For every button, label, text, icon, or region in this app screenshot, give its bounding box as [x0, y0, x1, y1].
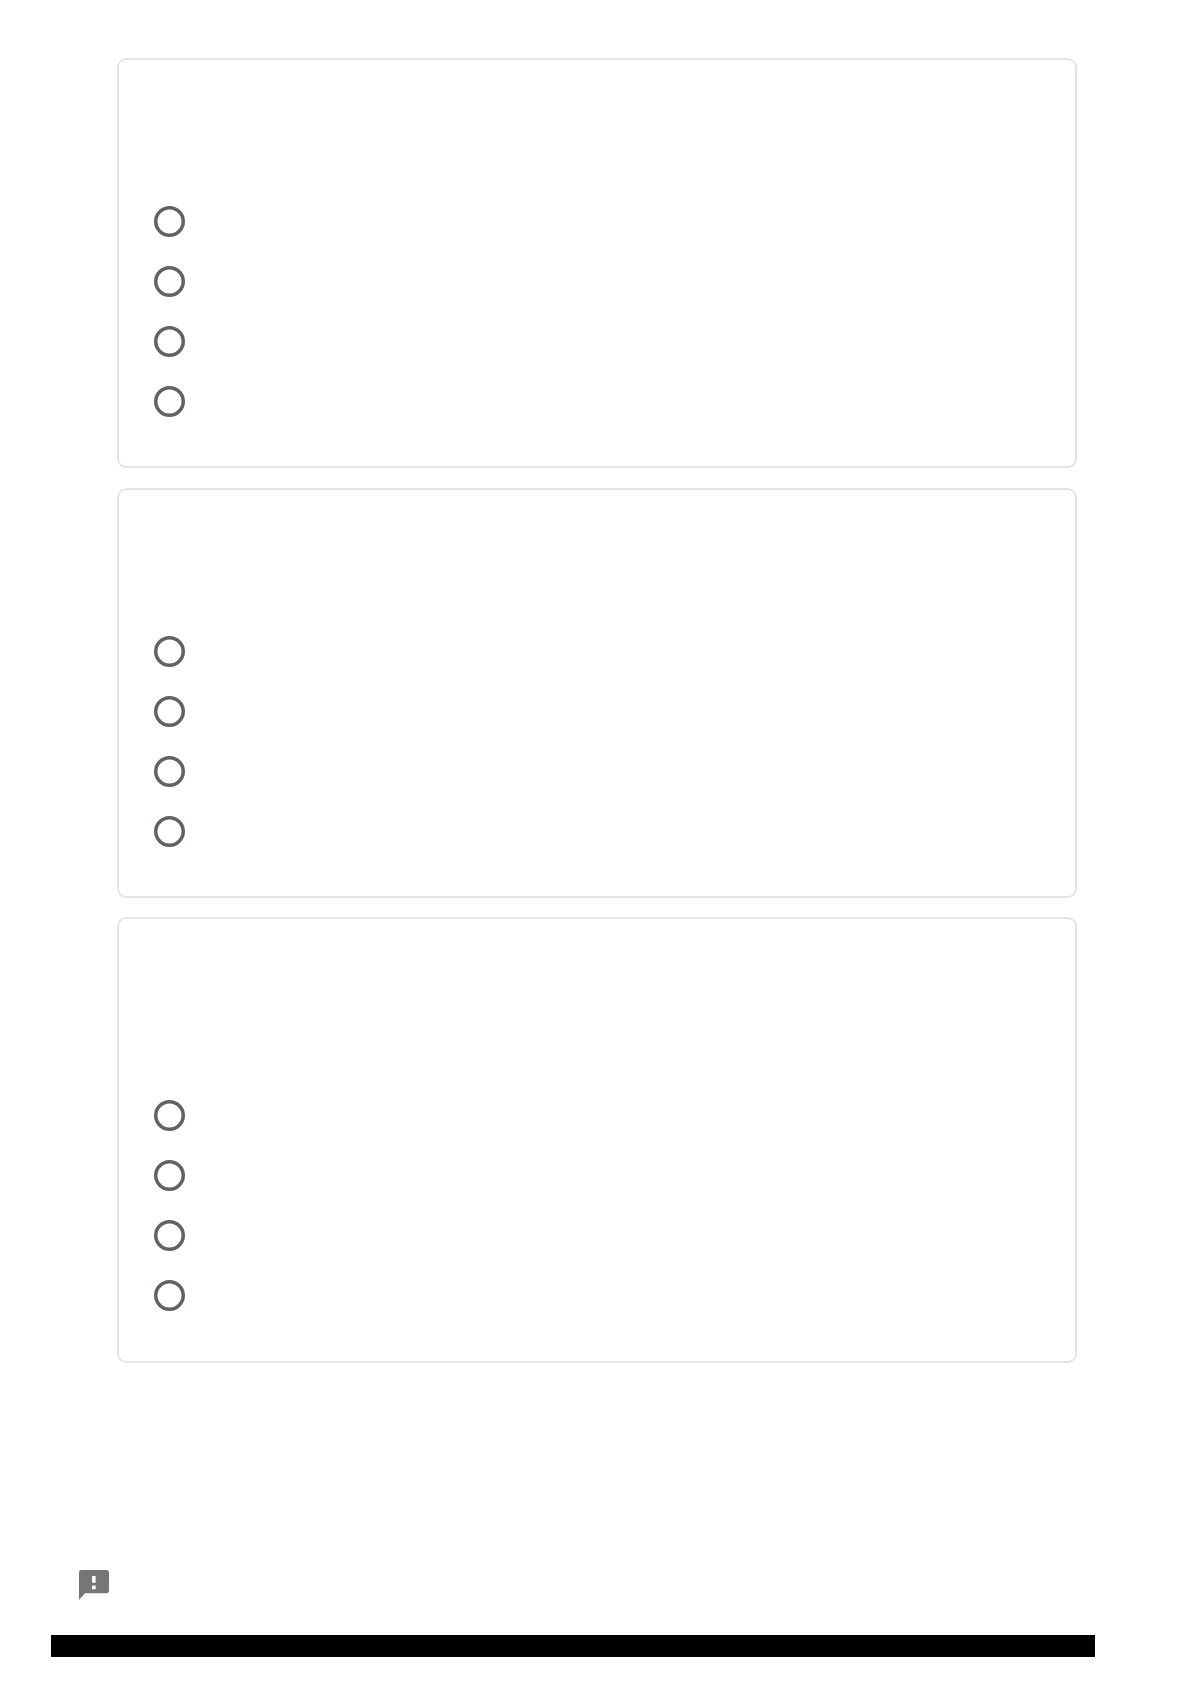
button[interactable] — [117, 1265, 1077, 1325]
button[interactable] — [117, 488, 1077, 898]
button[interactable] — [117, 58, 1077, 468]
button[interactable] — [117, 917, 1077, 1363]
button[interactable]: Send feedback — [79, 1570, 109, 1600]
button[interactable] — [117, 251, 1077, 311]
button[interactable] — [117, 1145, 1077, 1205]
button[interactable] — [117, 311, 1077, 371]
button[interactable] — [117, 621, 1077, 681]
button[interactable] — [117, 191, 1077, 251]
button[interactable] — [117, 371, 1077, 431]
button[interactable] — [117, 801, 1077, 861]
button[interactable] — [117, 1205, 1077, 1265]
button[interactable] — [117, 741, 1077, 801]
button[interactable] — [117, 681, 1077, 741]
button[interactable] — [117, 1085, 1077, 1145]
